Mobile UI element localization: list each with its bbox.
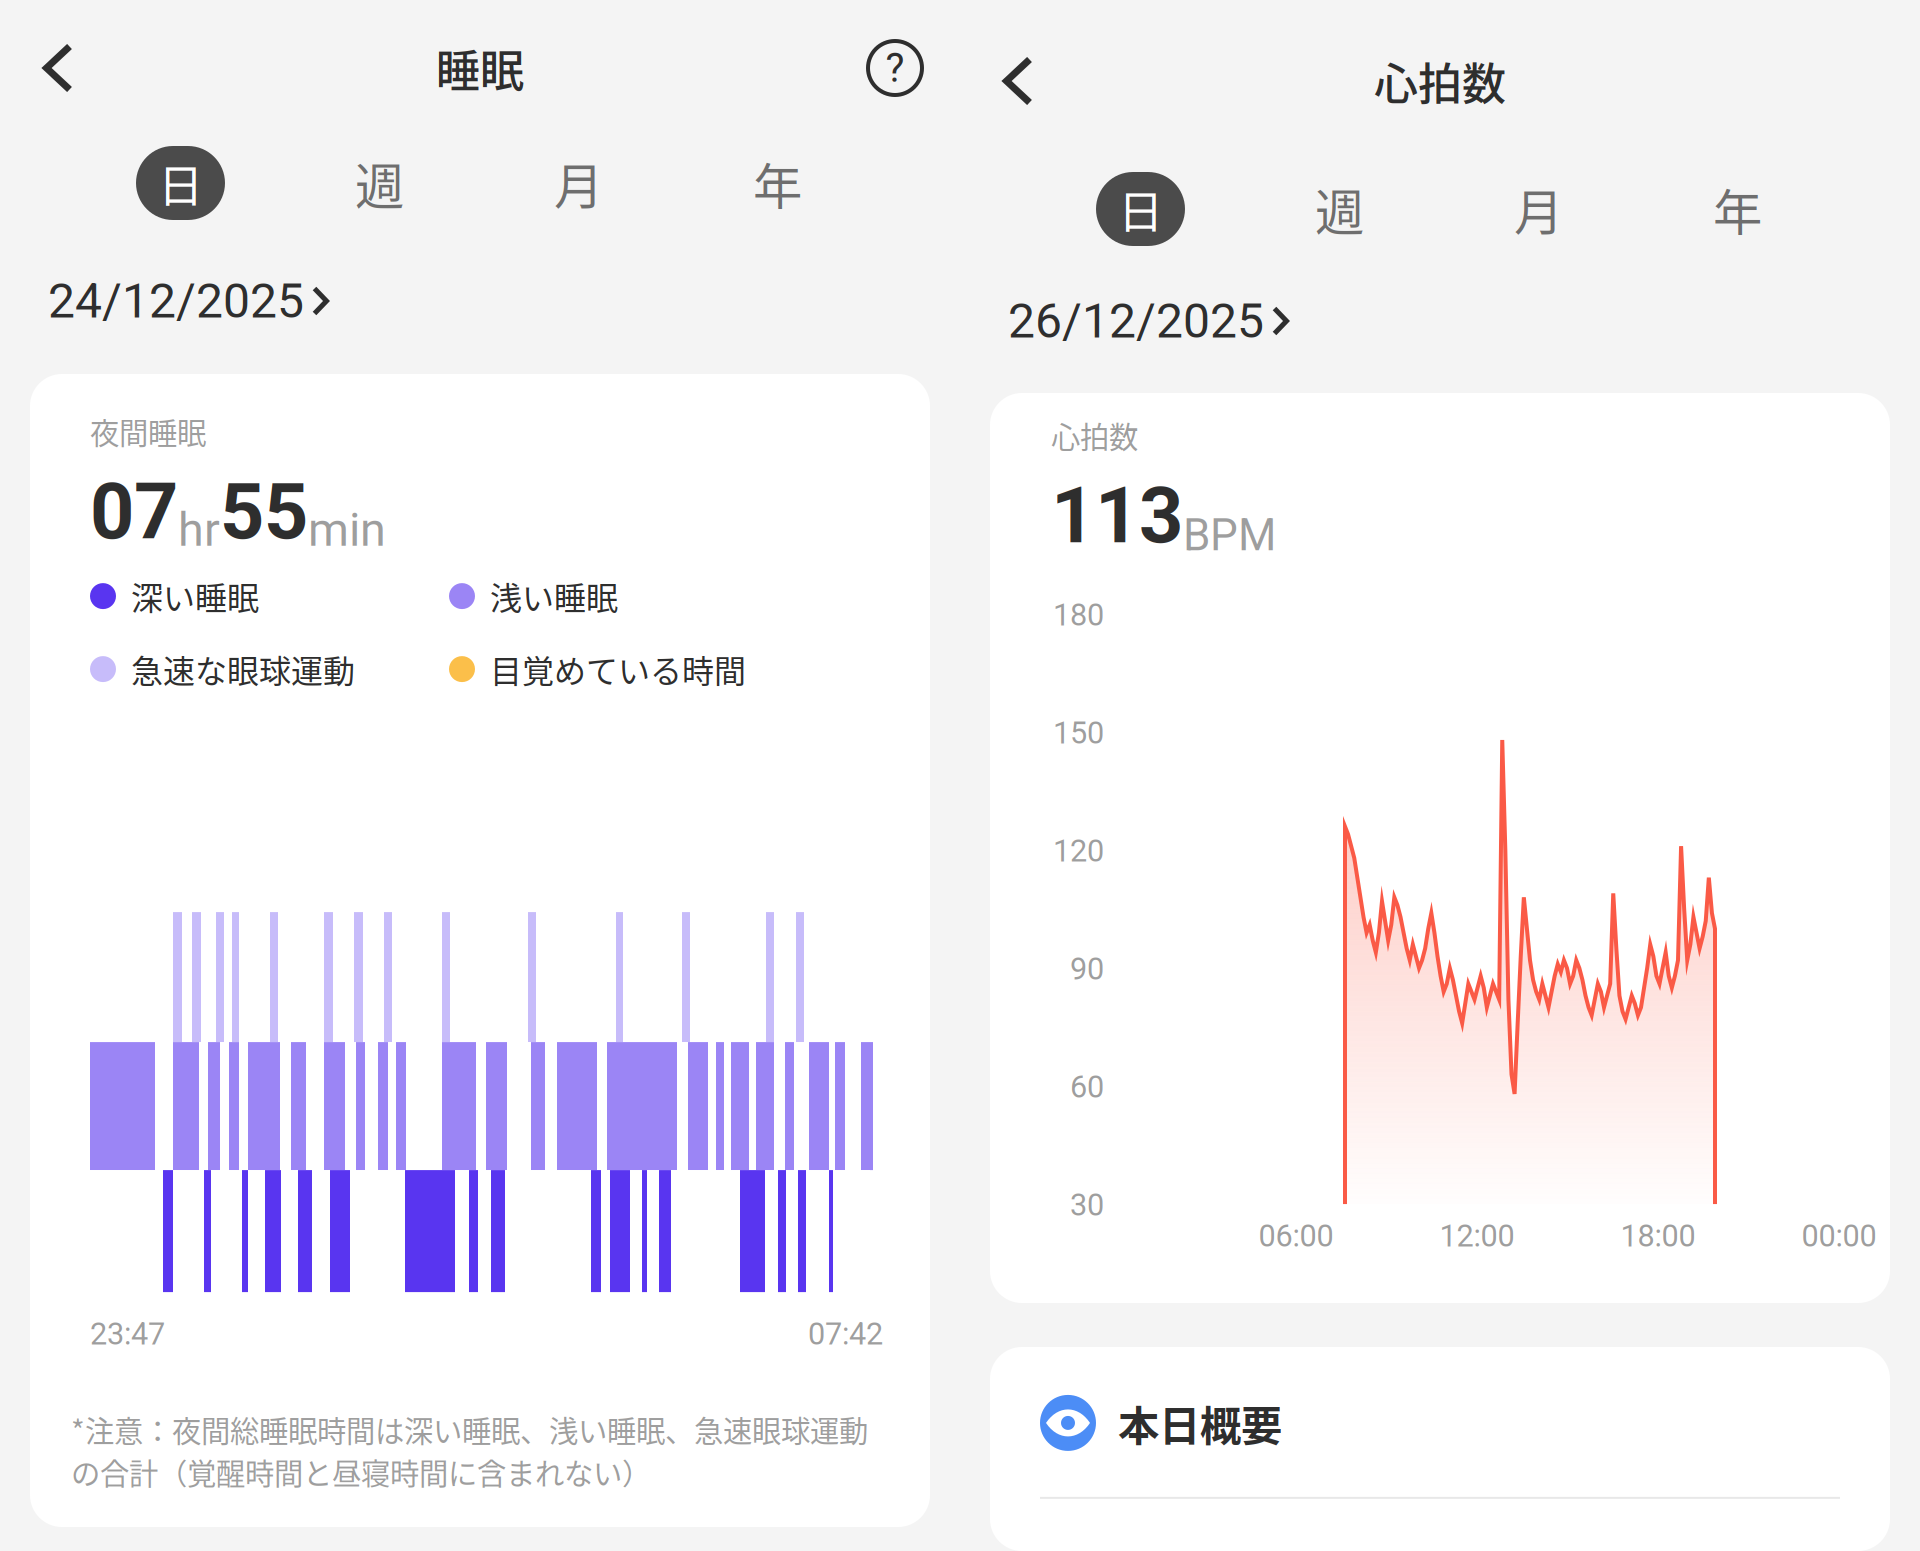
staticText: 月 xyxy=(554,147,603,219)
staticText: 55 xyxy=(220,466,308,557)
staticText: 18:00 xyxy=(1620,1218,1695,1254)
staticText: 月 xyxy=(1514,173,1563,245)
button[interactable]: 年 xyxy=(733,146,822,220)
staticText: 06:00 xyxy=(1258,1218,1333,1254)
button[interactable]: Help xyxy=(830,13,960,123)
staticText: *注意：夜間総睡眠時間は深い睡眠、浅い睡眠、急速眼球運動の合計（覚醒時間と昼寝時… xyxy=(71,1408,868,1493)
button[interactable]: Back xyxy=(0,13,120,123)
staticText: 本日概要 xyxy=(1118,1393,1282,1453)
staticText: 23:47 xyxy=(90,1316,165,1352)
staticText: 睡眠 xyxy=(436,36,524,100)
staticText: 07 xyxy=(90,466,178,557)
staticText: 夜間睡眠 xyxy=(90,410,206,452)
button[interactable]: 年 xyxy=(1693,172,1782,246)
staticText: min xyxy=(308,502,386,557)
staticText: 週 xyxy=(1315,173,1364,245)
staticText: 心拍数 xyxy=(1051,414,1138,456)
button[interactable]: 週 xyxy=(1295,172,1384,246)
button[interactable]: 月 xyxy=(534,146,623,220)
button[interactable]: Back xyxy=(960,26,1080,136)
staticText: hr xyxy=(178,502,220,557)
staticText: 浅い睡眠 xyxy=(490,573,618,619)
staticText: 30 xyxy=(1070,1187,1104,1223)
staticText: 26/12/2025 xyxy=(1008,293,1264,349)
button[interactable]: 日 xyxy=(1096,172,1185,246)
staticText: 60 xyxy=(1070,1069,1104,1105)
staticText: 00:00 xyxy=(1801,1218,1876,1254)
staticText: BPM xyxy=(1183,509,1276,561)
button[interactable]: 週 xyxy=(335,146,424,220)
button[interactable]: 日 xyxy=(136,146,225,220)
button[interactable]: 26/12/2025 xyxy=(960,286,1920,356)
staticText: 12:00 xyxy=(1439,1218,1514,1254)
staticText: 150 xyxy=(1053,715,1104,751)
staticText: 週 xyxy=(355,147,404,219)
staticText: 日 xyxy=(1118,176,1163,242)
staticText: 113 xyxy=(1051,470,1183,561)
staticText: 07:42 xyxy=(808,1316,883,1352)
staticText: 年 xyxy=(753,147,802,219)
staticText: 90 xyxy=(1070,951,1104,987)
staticText: 180 xyxy=(1053,597,1104,633)
button[interactable]: 月 xyxy=(1494,172,1583,246)
staticText: 急速な眼球運動 xyxy=(131,646,355,692)
staticText: 日 xyxy=(158,150,203,216)
staticText: 120 xyxy=(1053,833,1104,869)
staticText: 心拍数 xyxy=(1374,49,1506,113)
staticText: ? xyxy=(885,45,904,91)
staticText: 24/12/2025 xyxy=(48,273,304,329)
button[interactable]: 24/12/2025 xyxy=(0,266,960,336)
staticText: 目覚めている時間 xyxy=(490,646,746,692)
staticText: 深い睡眠 xyxy=(131,573,259,619)
staticText: 年 xyxy=(1713,173,1762,245)
